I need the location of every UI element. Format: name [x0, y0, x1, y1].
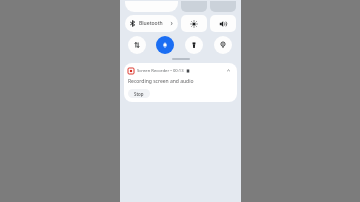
button[interactable]: Collapse [224, 66, 233, 75]
staticText: Bluetooth [139, 20, 169, 27]
button[interactable]: Data Saver [128, 36, 146, 54]
staticText: Screen Recorder • 00:13 [137, 68, 184, 74]
button[interactable]: Do Not Disturb [156, 36, 174, 54]
staticText: Stop [134, 91, 144, 97]
button[interactable]: Location [214, 36, 232, 54]
button[interactable]: Internet tile [125, 1, 178, 12]
button[interactable]: Stop [128, 89, 150, 98]
button[interactable]: Screen Recorder • 00:13 [124, 63, 237, 102]
button[interactable]: Flashlight [185, 36, 203, 54]
staticText: Recording screen and audio [128, 78, 194, 85]
button[interactable]: Volume [210, 15, 236, 32]
button[interactable]: Brightness tile [181, 1, 207, 12]
button[interactable]: Bluetooth [125, 15, 178, 32]
button[interactable]: Volume tile [210, 1, 236, 12]
button[interactable]: Brightness [181, 15, 207, 32]
